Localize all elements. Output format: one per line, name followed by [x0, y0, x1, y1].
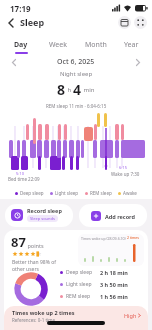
button[interactable] — [118, 16, 131, 29]
staticText: Times woke up (28.09-6.10) — [81, 236, 126, 241]
button[interactable]: Add record — [79, 204, 147, 227]
staticText: 17:19 — [10, 3, 31, 14]
staticText: REM sleep 11 min · 6:04-6:15 — [46, 103, 107, 109]
staticText: 5:10 — [16, 171, 24, 176]
staticText: Night sleep — [60, 70, 93, 78]
staticText: Deep sleep — [20, 190, 44, 196]
staticText: Awake — [123, 190, 137, 196]
staticText: Better than 98% of other users — [12, 259, 56, 273]
staticText: 2 h 18 min — [100, 269, 128, 276]
button[interactable] — [4, 16, 18, 30]
staticText: Sleep sounds — [30, 216, 55, 221]
staticText: 4 — [73, 80, 82, 99]
staticText: 1 h 56 min — [100, 293, 128, 300]
staticText: Times woke up 2 times — [12, 309, 75, 316]
staticText: REM sleep — [66, 293, 100, 300]
staticText: References: 0-1 time — [12, 317, 56, 323]
staticText: min — [82, 86, 95, 94]
staticText: REM sleep — [90, 190, 112, 196]
staticText: 3 h 50 min — [100, 281, 128, 288]
staticText: Light sleep — [55, 190, 79, 196]
staticText: Wake up 7:30 — [111, 171, 140, 177]
staticText: h — [66, 86, 73, 94]
staticText: 8 — [57, 80, 66, 99]
button[interactable]: Week — [49, 40, 68, 50]
staticText: 6:15 — [119, 165, 127, 170]
button[interactable]: Month — [85, 40, 107, 50]
staticText: Add record — [105, 213, 135, 220]
button[interactable]: Times woke up 2 times — [4, 306, 148, 330]
button[interactable]: Record sleep — [5, 204, 73, 227]
staticText: Light sleep — [66, 281, 100, 288]
staticText: 2 times — [127, 235, 140, 240]
staticText: Record sleep — [27, 207, 62, 214]
staticText: Sleep — [20, 16, 45, 28]
staticText: Day — [14, 40, 28, 50]
staticText: High — [124, 312, 137, 319]
button[interactable] — [134, 16, 147, 29]
staticText: Bed time 22:09 — [8, 176, 40, 182]
staticText: points — [26, 242, 44, 249]
button[interactable]: Year — [124, 40, 139, 50]
staticText: 87 — [11, 233, 26, 251]
button[interactable]: Day — [14, 40, 28, 54]
staticText: Oct 6, 2025 — [57, 57, 95, 67]
staticText: Deep sleep — [66, 269, 100, 276]
